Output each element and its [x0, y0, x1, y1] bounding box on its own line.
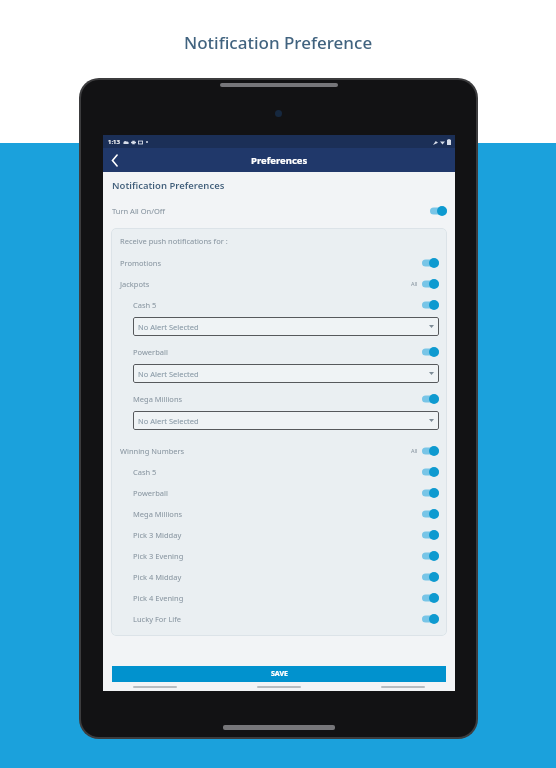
button[interactable]: Powerball [111, 482, 447, 503]
staticText: No Alert Selected [138, 369, 199, 379]
staticText: Lucky For Life [133, 614, 182, 624]
staticText: All [411, 447, 418, 454]
staticText: 1:13 [108, 138, 120, 146]
staticText: No Alert Selected [138, 322, 199, 332]
button[interactable]: Back [103, 148, 127, 172]
button[interactable]: SAVE [112, 666, 446, 682]
button[interactable]: Lucky For Life [111, 608, 447, 629]
button[interactable]: Pick 4 Midday [111, 566, 447, 587]
staticText: Winning Numbers [120, 446, 185, 456]
staticText: Notification Preference [184, 31, 373, 54]
staticText: Turn All On/Off [112, 206, 166, 216]
button[interactable]: Promotions [111, 252, 447, 273]
staticText: No Alert Selected [138, 416, 199, 426]
staticText: Preferences [251, 154, 308, 167]
staticText: Mega Millions [133, 509, 183, 519]
staticText: Powerball [133, 347, 168, 357]
button[interactable]: No Alert Selected [133, 364, 439, 383]
staticText: Pick 4 Evening [133, 593, 184, 603]
button[interactable]: No Alert Selected [133, 411, 439, 430]
button[interactable]: Cash 5 [111, 294, 447, 315]
button[interactable]: No Alert Selected [133, 317, 439, 336]
button[interactable]: Turn All On/Off [103, 200, 455, 221]
staticText: SAVE [271, 669, 288, 679]
staticText: All [411, 280, 418, 287]
button[interactable]: Jackpots [111, 273, 447, 294]
staticText: Pick 3 Midday [133, 530, 182, 540]
staticText: Mega Millions [133, 394, 183, 404]
button[interactable]: Cash 5 [111, 461, 447, 482]
staticText: Promotions [120, 258, 161, 268]
staticText: Notification Preferences [112, 179, 225, 192]
staticText: Receive push notifications for : [120, 236, 228, 246]
button[interactable]: Pick 4 Evening [111, 587, 447, 608]
staticText: Powerball [133, 488, 168, 498]
button[interactable]: Pick 3 Midday [111, 524, 447, 545]
staticText: Pick 3 Evening [133, 551, 184, 561]
staticText: Cash 5 [133, 300, 157, 310]
button[interactable]: Mega Millions [111, 388, 447, 409]
button[interactable]: Mega Millions [111, 503, 447, 524]
button[interactable]: Winning Numbers [111, 440, 447, 461]
staticText: Jackpots [120, 279, 150, 289]
button[interactable]: Pick 3 Evening [111, 545, 447, 566]
staticText: Pick 4 Midday [133, 572, 182, 582]
button[interactable]: Powerball [111, 341, 447, 362]
staticText: Cash 5 [133, 467, 157, 477]
